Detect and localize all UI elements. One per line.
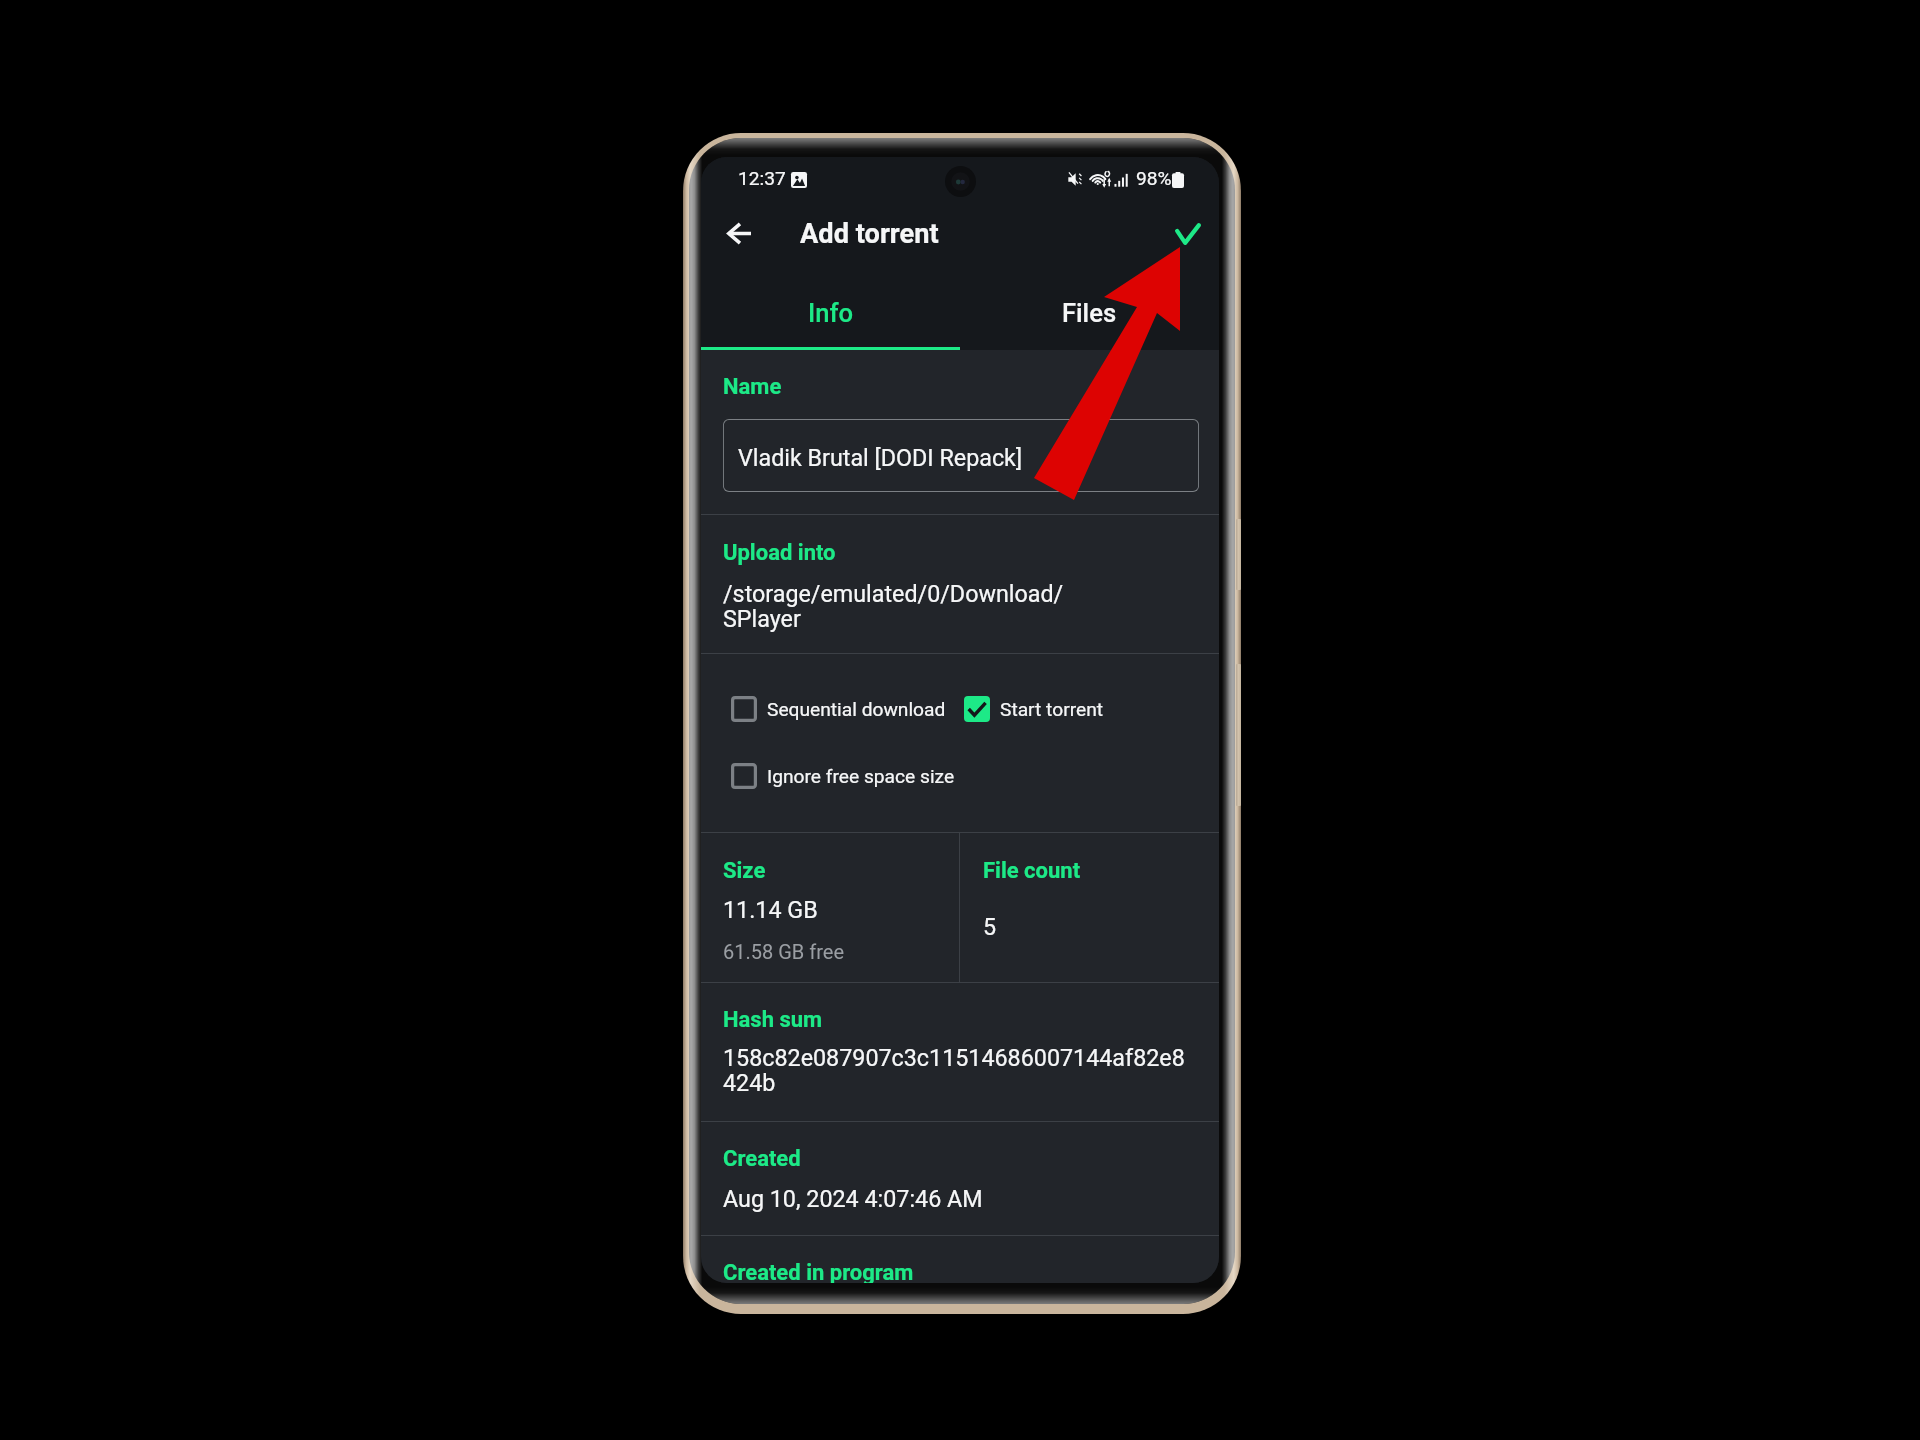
staticText: Add torrent	[800, 218, 939, 250]
staticText: Hash sum	[723, 1007, 823, 1033]
staticText: Name	[723, 374, 782, 400]
button[interactable]: Ignore free space size	[731, 763, 955, 789]
staticText: Vladik Brutal [DODI Repack]	[738, 444, 1023, 471]
staticText: Info	[808, 298, 854, 328]
staticText: Sequential download	[767, 698, 946, 721]
button[interactable]: Info	[701, 277, 960, 350]
button[interactable]: Vladik Brutal [DODI Repack]	[723, 419, 1199, 492]
staticText: 158c82e087907c3c11514686007144af82e8 424…	[723, 1044, 1185, 1097]
staticText: 98%	[1136, 167, 1172, 190]
staticText: Files	[1062, 298, 1117, 328]
button[interactable]: Back	[713, 208, 764, 259]
staticText: Ignore free space size	[767, 765, 955, 788]
staticText: Created in program	[723, 1260, 914, 1283]
staticText: File count	[983, 858, 1081, 884]
staticText: /storage/emulated/0/Download/ SPlayer	[723, 580, 1064, 633]
staticText: Start torrent	[1000, 698, 1104, 721]
button[interactable]: Start torrent	[964, 696, 1104, 722]
button[interactable]: Confirm, add torrent	[1162, 208, 1213, 259]
staticText: 61.58 GB free	[723, 940, 844, 963]
staticText: 12:37	[738, 167, 786, 190]
staticText: Size	[723, 858, 766, 884]
staticText: Created	[723, 1146, 801, 1172]
button[interactable]: Sequential download	[731, 696, 946, 722]
button[interactable]: Files	[960, 277, 1219, 350]
staticText: 11.14 GB	[723, 896, 818, 923]
staticText: Upload into	[723, 540, 836, 566]
button[interactable]: Upload into	[701, 515, 1219, 653]
staticText: Aug 10, 2024 4:07:46 AM	[723, 1185, 983, 1212]
staticText: 5	[983, 913, 997, 940]
